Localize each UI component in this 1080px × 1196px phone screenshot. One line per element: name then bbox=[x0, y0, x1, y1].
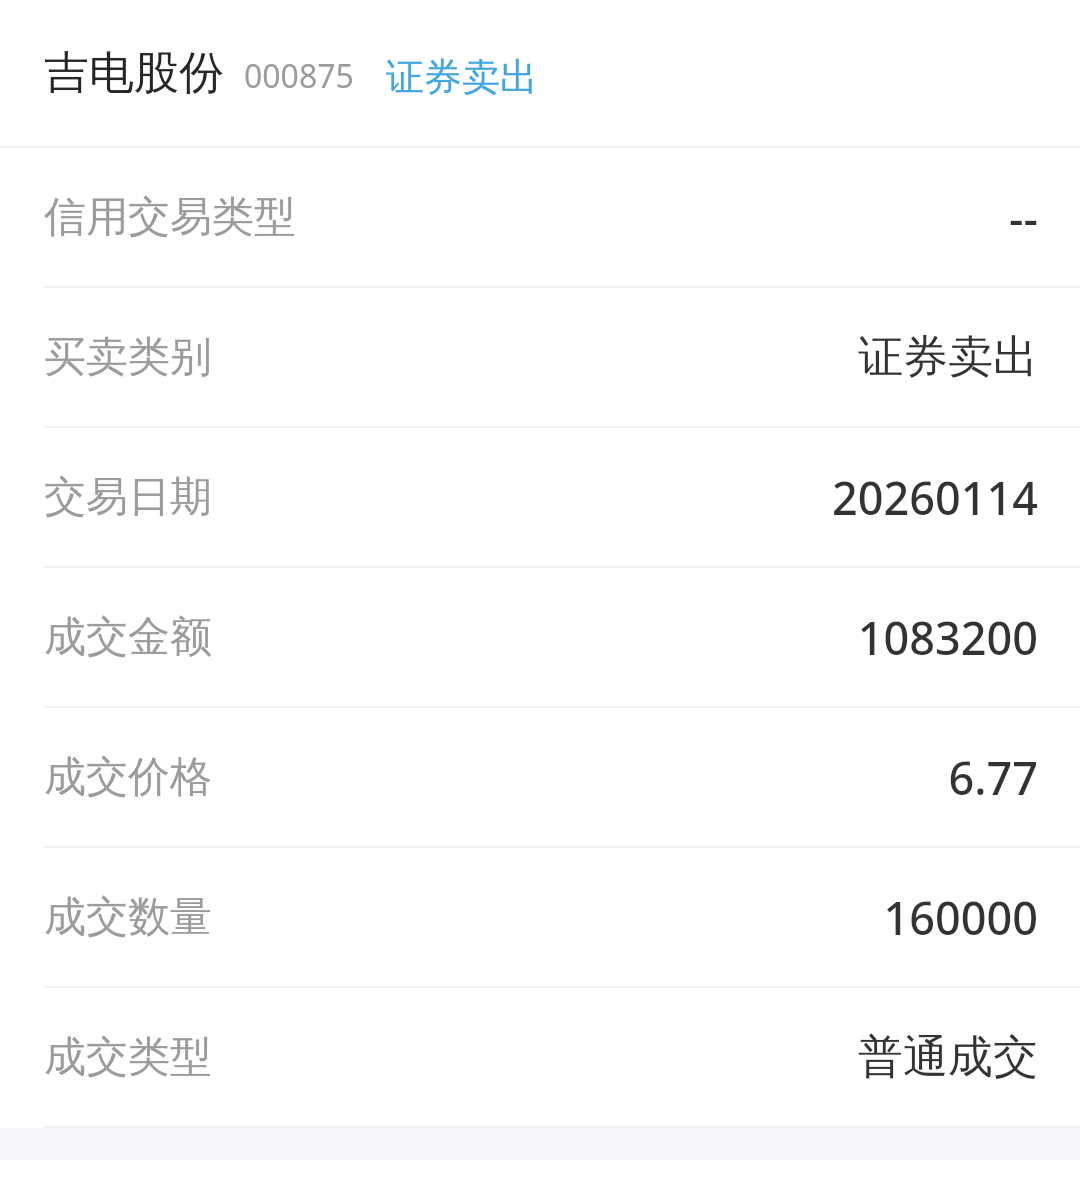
button[interactable]: 交易日期 bbox=[0, 428, 1080, 566]
button[interactable]: 成交数量 bbox=[0, 848, 1080, 986]
staticText: 成交数量 bbox=[44, 891, 212, 944]
staticText: 买卖类别 bbox=[44, 331, 212, 384]
button[interactable]: 成交类型 bbox=[0, 988, 1080, 1126]
button[interactable]: 成交价格 bbox=[0, 708, 1080, 846]
staticText: 160000 bbox=[883, 887, 1038, 948]
staticText: 20260114 bbox=[832, 467, 1038, 528]
staticText: 成交金额 bbox=[44, 611, 212, 664]
staticText: 证券卖出 bbox=[858, 329, 1038, 386]
staticText: 6.77 bbox=[948, 747, 1038, 808]
staticText: -- bbox=[1009, 187, 1038, 248]
button[interactable]: 成交金额 bbox=[0, 568, 1080, 706]
staticText: 成交价格 bbox=[44, 751, 212, 804]
staticText: 成交类型 bbox=[44, 1031, 212, 1084]
staticText: 普通成交 bbox=[858, 1029, 1038, 1086]
staticText: 证券卖出 bbox=[386, 53, 538, 101]
staticText: 吉电股份 bbox=[44, 45, 224, 102]
staticText: 1083200 bbox=[857, 607, 1038, 668]
staticText: 交易日期 bbox=[44, 471, 212, 524]
button[interactable]: 信用交易类型 bbox=[0, 148, 1080, 286]
button[interactable]: 买卖类别 bbox=[0, 288, 1080, 426]
staticText: 000875 bbox=[244, 54, 354, 98]
staticText: 信用交易类型 bbox=[44, 191, 296, 244]
button[interactable]: 吉电股份 bbox=[0, 0, 1080, 146]
